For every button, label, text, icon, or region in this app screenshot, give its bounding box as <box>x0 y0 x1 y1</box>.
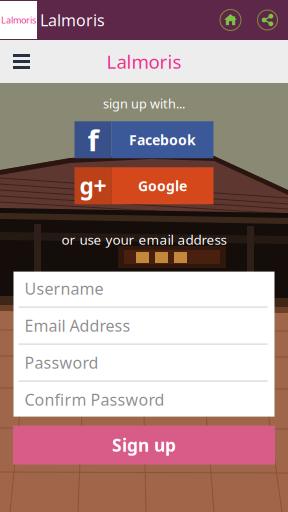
staticText: sign up with... <box>103 95 185 112</box>
button[interactable]: Home <box>216 0 245 40</box>
staticText: Facebook <box>129 130 196 149</box>
staticText: Sign up <box>112 434 176 457</box>
staticText: or use your email address <box>61 230 226 249</box>
staticText: Confirm Password <box>24 389 164 410</box>
button[interactable]: Sign up <box>13 426 275 465</box>
button[interactable]: f <box>74 121 213 158</box>
staticText: Lalmoris <box>1 14 36 26</box>
staticText: g+ <box>79 171 106 201</box>
staticText: Lalmoris <box>40 9 105 31</box>
button[interactable]: g+ <box>74 167 213 204</box>
button[interactable]: Share <box>253 0 282 40</box>
staticText: Google <box>138 176 187 195</box>
staticText: f <box>87 120 98 159</box>
button[interactable]: Menu <box>5 40 38 83</box>
staticText: Password <box>24 352 98 373</box>
staticText: Email Address <box>24 315 130 336</box>
staticText: Username <box>24 278 103 299</box>
staticText: Lalmoris <box>106 49 181 74</box>
